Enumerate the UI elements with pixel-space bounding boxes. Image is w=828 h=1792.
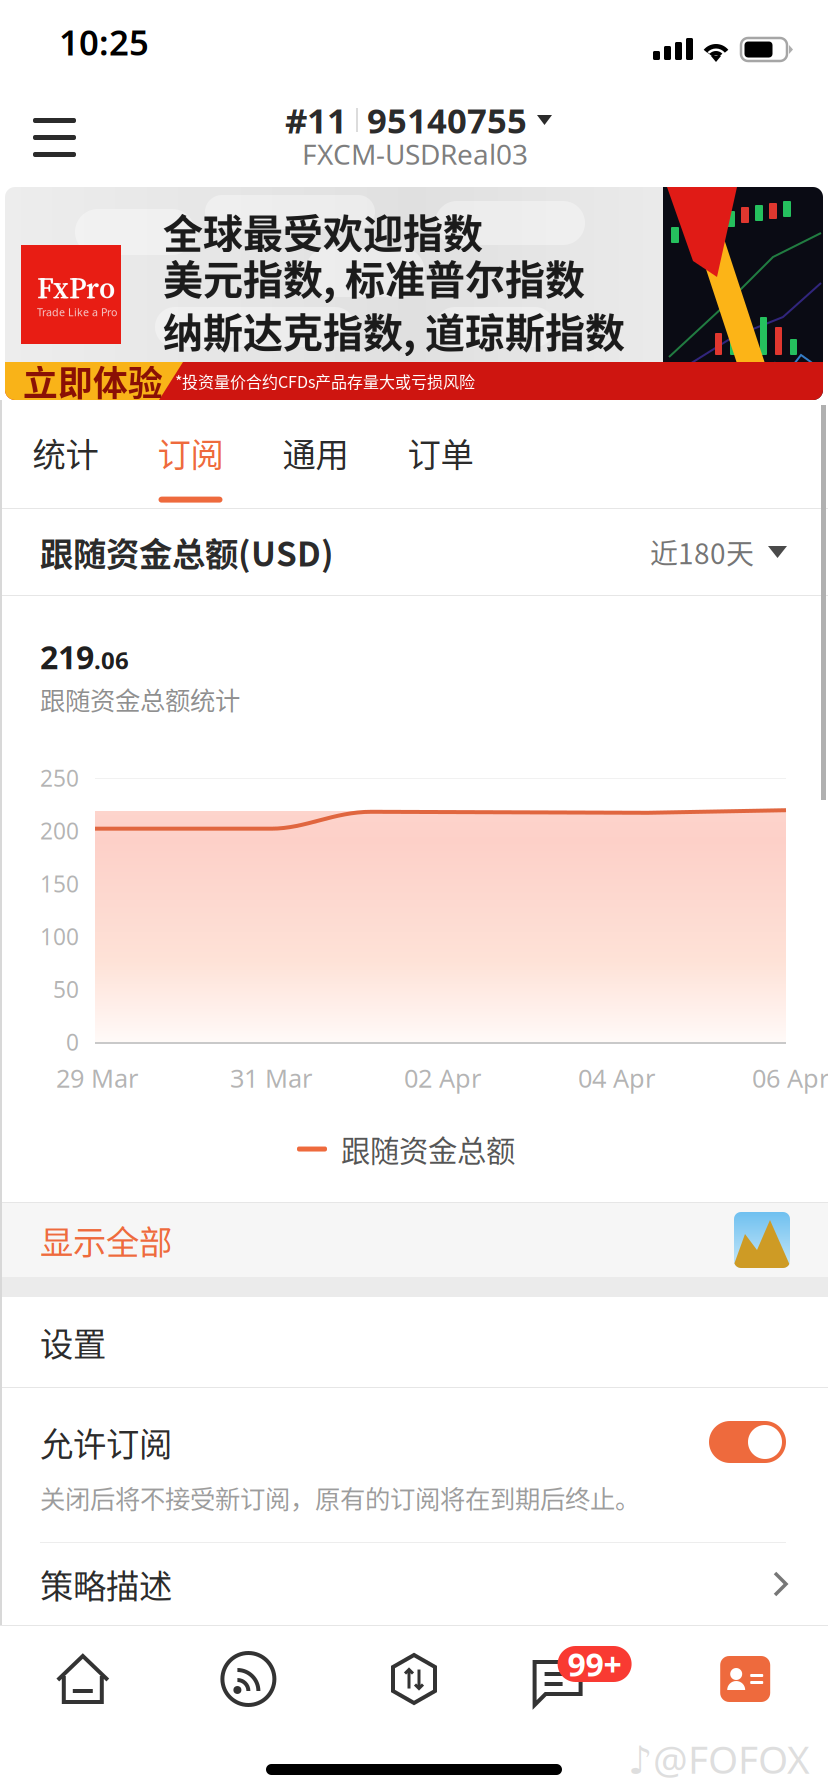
staticText: 设置 <box>40 1318 106 1366</box>
staticText: 95140755 <box>367 97 527 143</box>
button[interactable]: Menu <box>0 88 104 187</box>
staticText: 订阅 <box>157 428 223 477</box>
staticText: ♪@FOFOX <box>628 1733 810 1784</box>
staticText: 全球最受欢迎指数 <box>163 202 483 260</box>
staticText: 显示全部 <box>40 1216 172 1264</box>
button[interactable]: 策略描述 <box>0 1543 828 1625</box>
staticText: .06 <box>94 644 129 676</box>
staticText: 跟随资金总额统计 <box>40 681 240 717</box>
button[interactable]: 统计 <box>3 400 128 508</box>
staticText: 100 <box>40 921 79 951</box>
button[interactable]: Signals <box>166 1625 331 1733</box>
button[interactable]: 全球最受欢迎指数 <box>0 187 828 400</box>
button[interactable]: #11 <box>285 88 605 187</box>
button[interactable]: Profile <box>662 1625 828 1733</box>
staticText: 99+ <box>568 1643 622 1685</box>
staticText: 策略描述 <box>40 1560 172 1608</box>
staticText: FxPro <box>37 268 115 308</box>
staticText: 10:25 <box>59 19 149 65</box>
button[interactable]: 近180天 <box>650 532 787 572</box>
staticText: 0 <box>66 1027 79 1057</box>
staticText: 150 <box>40 868 79 899</box>
button[interactable]: Messages <box>497 1625 662 1733</box>
staticText: 统计 <box>32 428 98 477</box>
button[interactable]: 显示全部 <box>0 1203 828 1277</box>
staticText: 关闭后将不接受新订阅，原有的订阅将在到期后终止。 <box>40 1479 640 1516</box>
staticText: 美元指数, 标准普尔指数 <box>163 248 585 306</box>
button[interactable]: 通用 <box>253 400 378 508</box>
staticText: 订单 <box>407 428 473 477</box>
staticText: Trade Like a Pro <box>37 305 117 319</box>
staticText: 50 <box>53 974 79 1004</box>
staticText: 06 Apr <box>752 1061 828 1095</box>
staticText: 04 Apr <box>578 1061 655 1095</box>
staticText: 29 Mar <box>56 1061 138 1095</box>
staticText: 跟随资金总额 <box>341 1128 515 1170</box>
staticText: *投资量价合约CFDs产品存量大或亏损风险 <box>175 369 475 393</box>
staticText: 250 <box>40 763 79 793</box>
staticText: 允许订阅 <box>40 1418 172 1466</box>
staticText: 近180天 <box>650 532 754 572</box>
button[interactable]: 订阅 <box>128 400 253 508</box>
button[interactable]: Trade <box>331 1625 497 1733</box>
staticText: 200 <box>40 816 79 846</box>
staticText: FXCM-USDReal03 <box>302 135 528 173</box>
staticText: 通用 <box>282 428 348 477</box>
staticText: 纳斯达克指数, 道琼斯指数 <box>163 301 625 359</box>
staticText: 02 Apr <box>404 1061 481 1095</box>
button[interactable]: 订单 <box>378 400 503 508</box>
button[interactable]: Home <box>0 1625 166 1733</box>
staticText: 31 Mar <box>230 1061 312 1095</box>
staticText: 立即体验 <box>23 356 163 406</box>
staticText: #11 <box>285 97 347 143</box>
staticText: 219 <box>40 635 94 678</box>
button[interactable]: 允许订阅 <box>709 1421 786 1463</box>
staticText: 跟随资金总额(USD) <box>40 528 334 576</box>
